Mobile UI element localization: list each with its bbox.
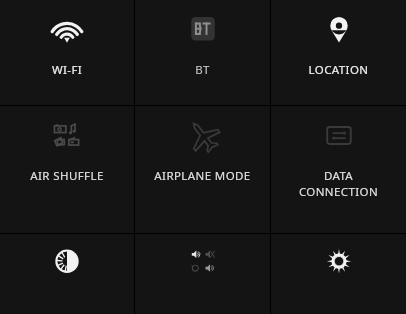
staticText: AIRPLANE MODE (135, 168, 270, 184)
button[interactable]: Location (271, 0, 406, 105)
button[interactable]: Data connection (271, 106, 406, 233)
staticText: LOCATION (271, 62, 406, 78)
button[interactable]: Airplane mode (135, 106, 270, 233)
button[interactable]: Brightness (271, 234, 406, 314)
button[interactable]: Display contrast (0, 234, 134, 314)
staticText: AIR SHUFFLE (0, 168, 134, 184)
button[interactable]: Sound mode (135, 234, 270, 314)
button[interactable]: Bluetooth (135, 0, 270, 105)
staticText: BT (135, 62, 270, 78)
button[interactable]: Air Shuffle (0, 106, 134, 233)
button[interactable]: Wi-Fi (0, 0, 134, 105)
staticText: DATA CONNECTION (271, 168, 406, 199)
staticText: WI-FI (0, 62, 134, 78)
